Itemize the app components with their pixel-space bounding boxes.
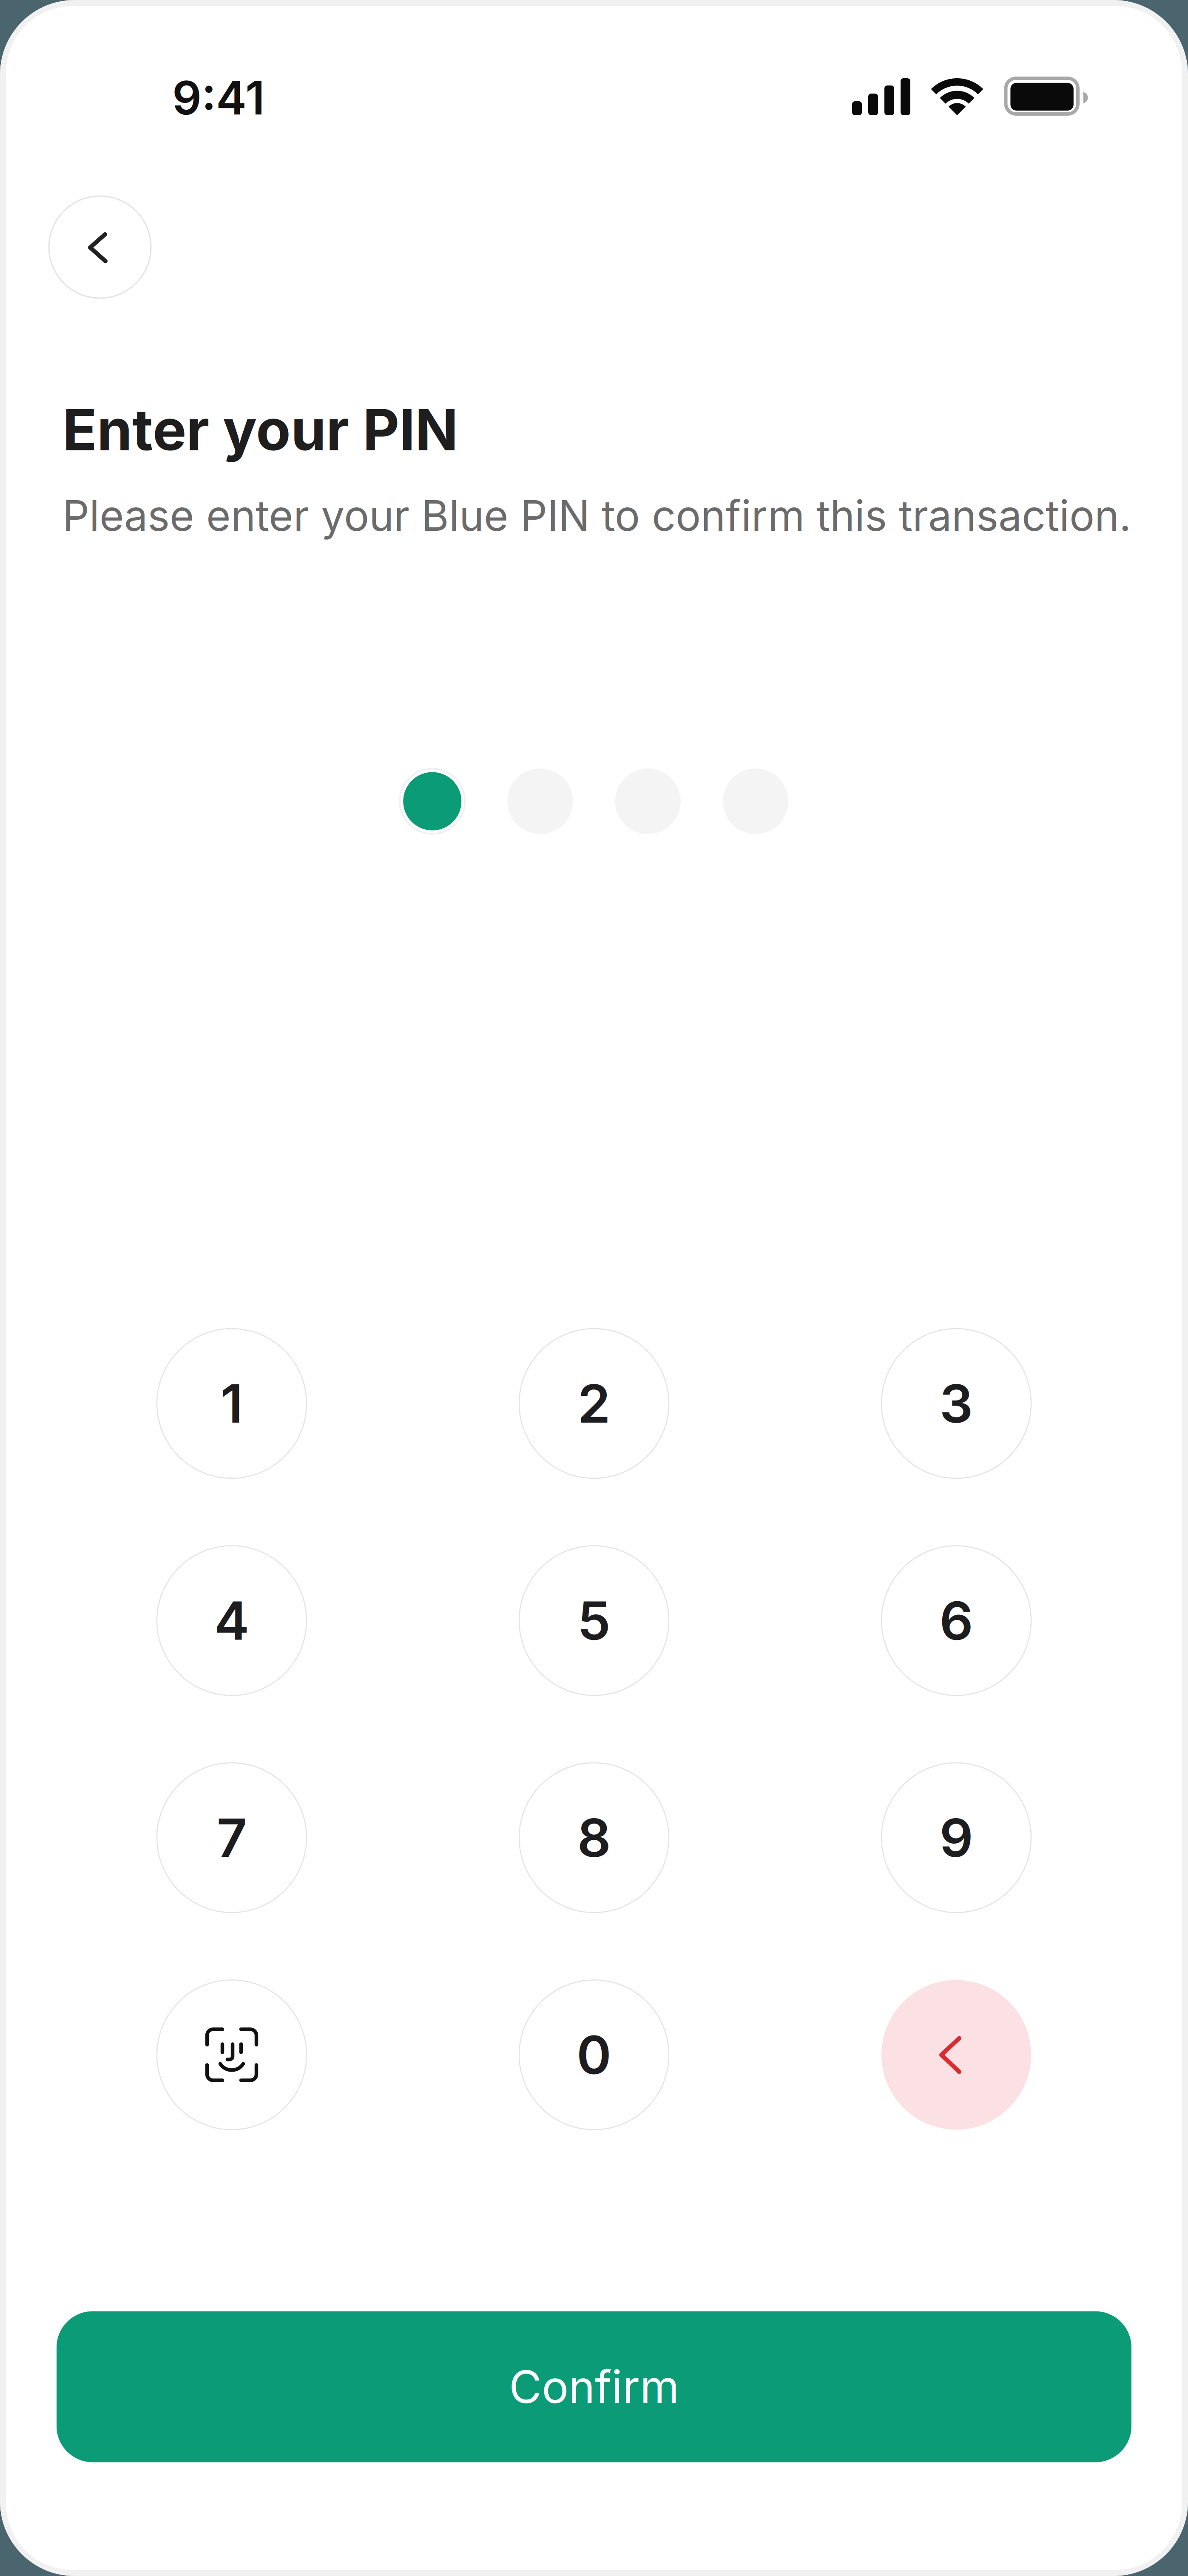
button[interactable]: 2 xyxy=(519,1329,669,1478)
staticText: 2 xyxy=(578,1372,610,1435)
staticText: 8 xyxy=(577,1806,611,1870)
button[interactable]: Back xyxy=(49,196,151,298)
staticText: 7 xyxy=(217,1806,247,1870)
button[interactable]: 5 xyxy=(519,1546,669,1695)
button[interactable]: Confirm xyxy=(57,2311,1131,2462)
button[interactable]: Delete xyxy=(881,1980,1031,2130)
button[interactable]: 0 xyxy=(519,1980,669,2130)
button[interactable]: 6 xyxy=(881,1546,1031,1695)
staticText: 1 xyxy=(221,1372,243,1435)
staticText: Confirm xyxy=(509,2360,679,2414)
button[interactable]: Face ID xyxy=(157,1980,307,2130)
button[interactable]: 4 xyxy=(157,1546,307,1695)
staticText: 5 xyxy=(577,1589,611,1652)
staticText: 4 xyxy=(214,1589,249,1652)
staticText: 9:41 xyxy=(172,70,265,126)
staticText: 0 xyxy=(577,2023,611,2087)
button[interactable]: 7 xyxy=(157,1763,307,1913)
staticText: 6 xyxy=(939,1589,973,1652)
staticText: 9 xyxy=(939,1806,973,1870)
button[interactable]: 3 xyxy=(881,1329,1031,1478)
button[interactable]: 8 xyxy=(519,1763,669,1913)
button[interactable]: 1 xyxy=(157,1329,307,1478)
staticText: Please enter your Blue PIN to confirm th… xyxy=(63,490,1131,541)
staticText: Enter your PIN xyxy=(63,395,458,464)
staticText: 3 xyxy=(939,1372,973,1435)
button[interactable]: 9 xyxy=(881,1763,1031,1913)
